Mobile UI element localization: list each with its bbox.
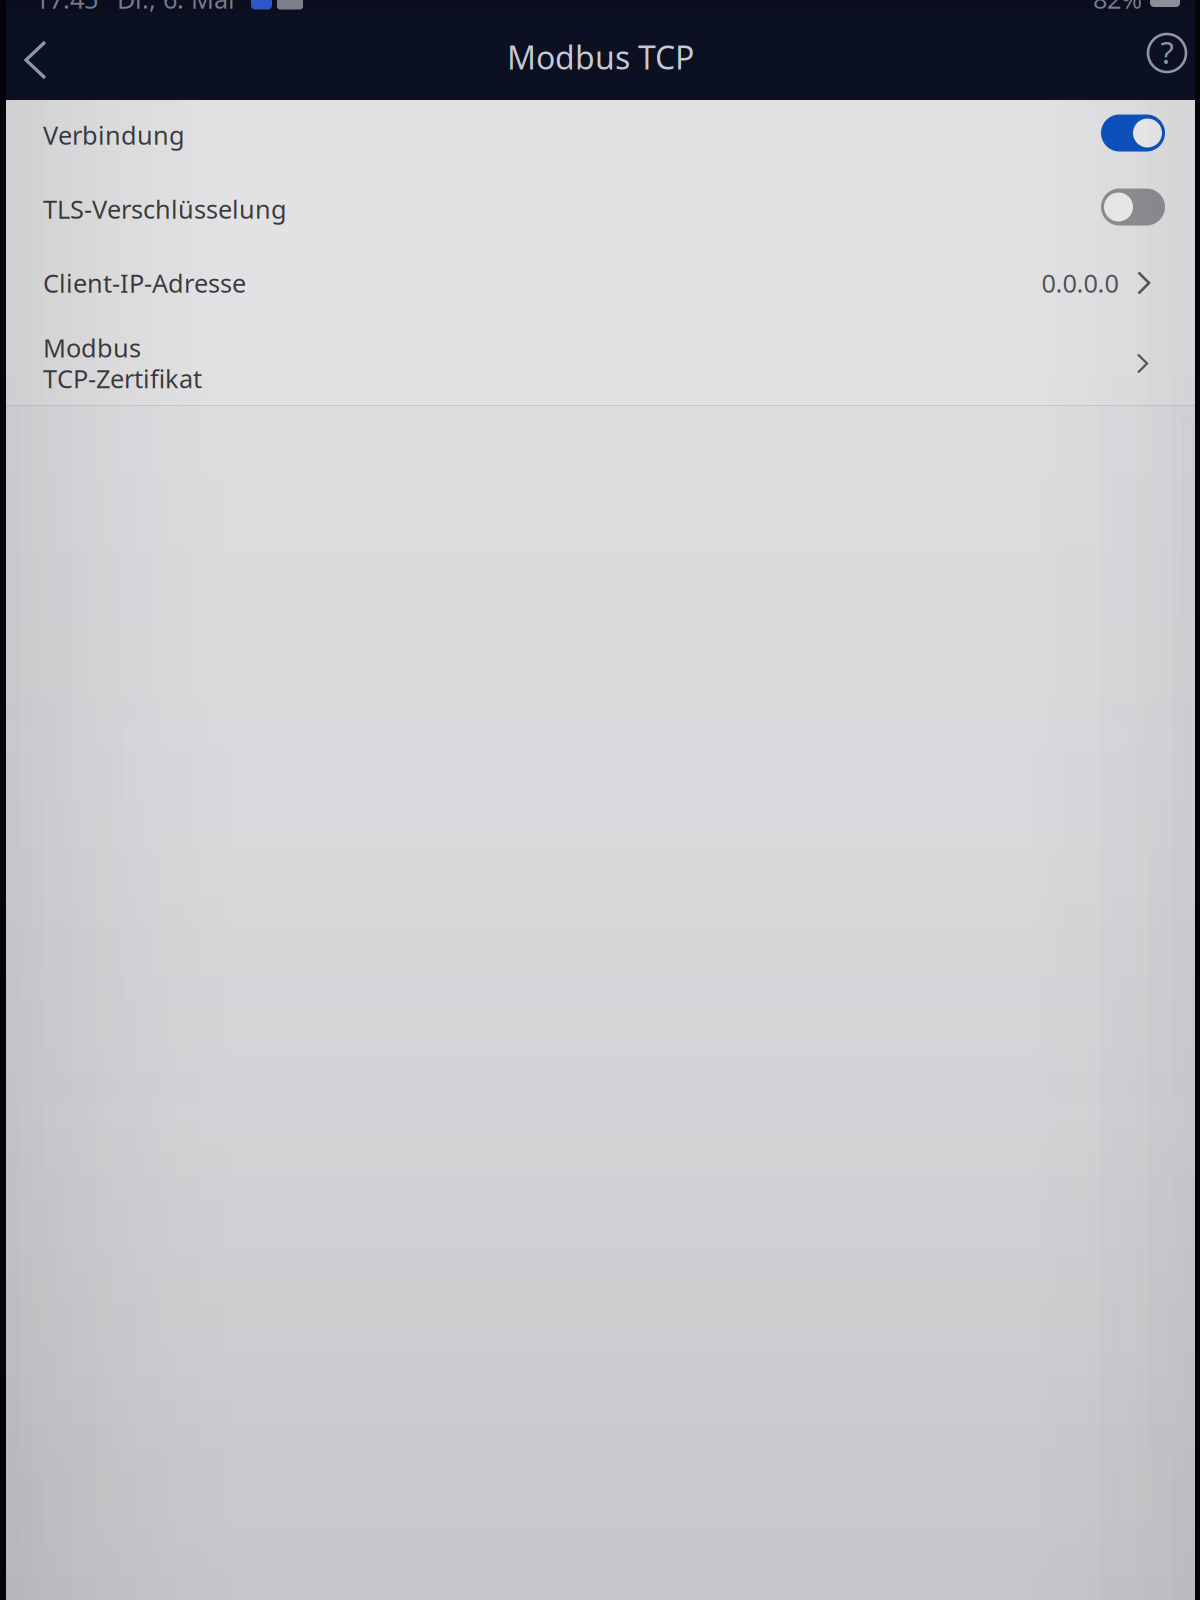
- staticText: Modbus: [43, 331, 141, 364]
- staticText: 0.0.0.0: [1041, 266, 1118, 300]
- button[interactable]: Help: [1139, 27, 1195, 93]
- button[interactable]: Client-IP-Adresse: [6, 248, 1195, 322]
- staticText: Client-IP-Adresse: [43, 266, 246, 300]
- button[interactable]: Verbindung: [6, 100, 1195, 174]
- staticText: 17:45: [35, 0, 98, 16]
- button[interactable]: TLS-Verschlüsselung: [6, 174, 1195, 248]
- staticText: Modbus TCP: [507, 36, 694, 78]
- button[interactable]: Back: [6, 22, 65, 98]
- staticText: TLS-Verschlüsselung: [43, 192, 287, 226]
- staticText: Di., 6. Mai: [117, 0, 235, 16]
- button[interactable]: Modbus: [6, 322, 1195, 405]
- staticText: 82%: [1093, 0, 1142, 16]
- staticText: TCP-Zertifikat: [43, 361, 202, 395]
- staticText: ?: [1160, 32, 1173, 72]
- staticText: Verbindung: [43, 118, 185, 152]
